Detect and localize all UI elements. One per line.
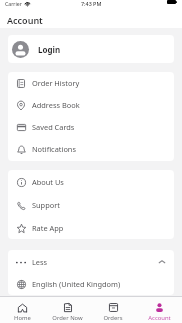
staticText: Home: [14, 314, 31, 322]
button[interactable]: Orders tab: [90, 297, 136, 323]
staticText: Account: [148, 314, 171, 322]
staticText: Saved Cards: [32, 122, 75, 132]
button[interactable]: About Us: [8, 170, 174, 193]
staticText: English (United Kingdom): [32, 279, 121, 289]
staticText: 7:43 PM: [81, 0, 102, 7]
button[interactable]: Account tab: [136, 297, 182, 323]
button[interactable]: Address Book: [8, 94, 174, 116]
button[interactable]: Saved Cards: [8, 116, 174, 138]
staticText: Rate App: [32, 223, 64, 233]
button[interactable]: Login: [8, 35, 174, 63]
button[interactable]: Less: [8, 250, 174, 273]
staticText: Login: [38, 44, 61, 55]
staticText: Order History: [32, 78, 80, 88]
staticText: Notifications: [32, 144, 76, 154]
staticText: Support: [32, 200, 60, 210]
staticText: Carrier: [5, 0, 22, 7]
staticText: About Us: [32, 177, 64, 187]
button[interactable]: Support: [8, 193, 174, 216]
button[interactable]: Rate App: [8, 216, 174, 239]
staticText: Less: [32, 257, 48, 267]
staticText: Account: [7, 14, 43, 26]
staticText: Orders: [103, 314, 123, 322]
button[interactable]: Notifications: [8, 138, 174, 160]
button[interactable]: English (United Kingdom): [8, 273, 174, 295]
button[interactable]: Order Now tab: [45, 297, 90, 323]
button[interactable]: Order History: [8, 72, 174, 94]
staticText: Address Book: [32, 100, 80, 110]
staticText: Order Now: [52, 314, 83, 322]
button[interactable]: Home tab: [0, 297, 45, 323]
